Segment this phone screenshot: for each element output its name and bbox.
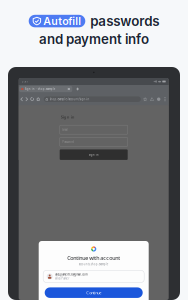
- staticText: Continue with account: [67, 254, 120, 262]
- staticText: Sign in · shop.example: [25, 87, 56, 91]
- staticText: Alex Parker: [55, 277, 69, 280]
- button[interactable]: alex.parker83@gmail.com: [43, 270, 144, 282]
- staticText: passwords: [90, 13, 159, 29]
- button[interactable]: Sign in: [60, 149, 128, 160]
- staticText: Continue: [86, 290, 101, 295]
- staticText: shop.example/account/sign-in: [49, 97, 89, 101]
- staticText: accounts.shop.example: [79, 262, 109, 266]
- staticText: and payment info: [39, 31, 149, 47]
- staticText: Password: [62, 140, 74, 144]
- button[interactable]: Continue: [45, 287, 143, 298]
- staticText: Email: [62, 128, 68, 131]
- staticText: alex.parker83@gmail.com: [55, 273, 87, 276]
- staticText: Sign in: [61, 114, 75, 120]
- staticText: Autofill: [43, 15, 81, 27]
- staticText: 9:41: [22, 80, 29, 83]
- staticText: Sign in: [89, 153, 99, 156]
